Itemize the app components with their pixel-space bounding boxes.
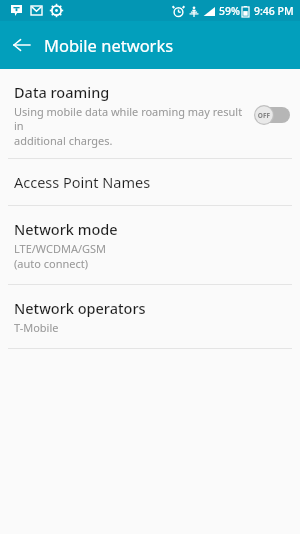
- staticText: Mobile networks: [44, 34, 174, 56]
- staticText: OFF: [255, 111, 273, 120]
- staticText: T-Mobile: [14, 320, 59, 335]
- button[interactable]: Network mode: [0, 206, 300, 284]
- button[interactable]: Back: [0, 23, 44, 67]
- staticText: additional charges.: [14, 133, 113, 148]
- staticText: Using mobile data while roaming may resu…: [14, 104, 246, 133]
- button[interactable]: Network operators: [0, 285, 300, 348]
- staticText: 9:46 PM: [254, 4, 294, 18]
- staticText: Network operators: [14, 298, 146, 318]
- staticText: (auto connect): [14, 256, 89, 271]
- button[interactable]: Data roaming off: [254, 105, 290, 125]
- staticText: LTE/WCDMA/GSM: [14, 241, 107, 256]
- button[interactable]: Data roaming: [0, 76, 300, 158]
- staticText: Network mode: [14, 219, 118, 239]
- staticText: Access Point Names: [14, 172, 151, 192]
- button[interactable]: Access Point Names: [0, 159, 300, 205]
- staticText: 59%: [219, 4, 240, 18]
- staticText: Data roaming: [14, 82, 110, 102]
